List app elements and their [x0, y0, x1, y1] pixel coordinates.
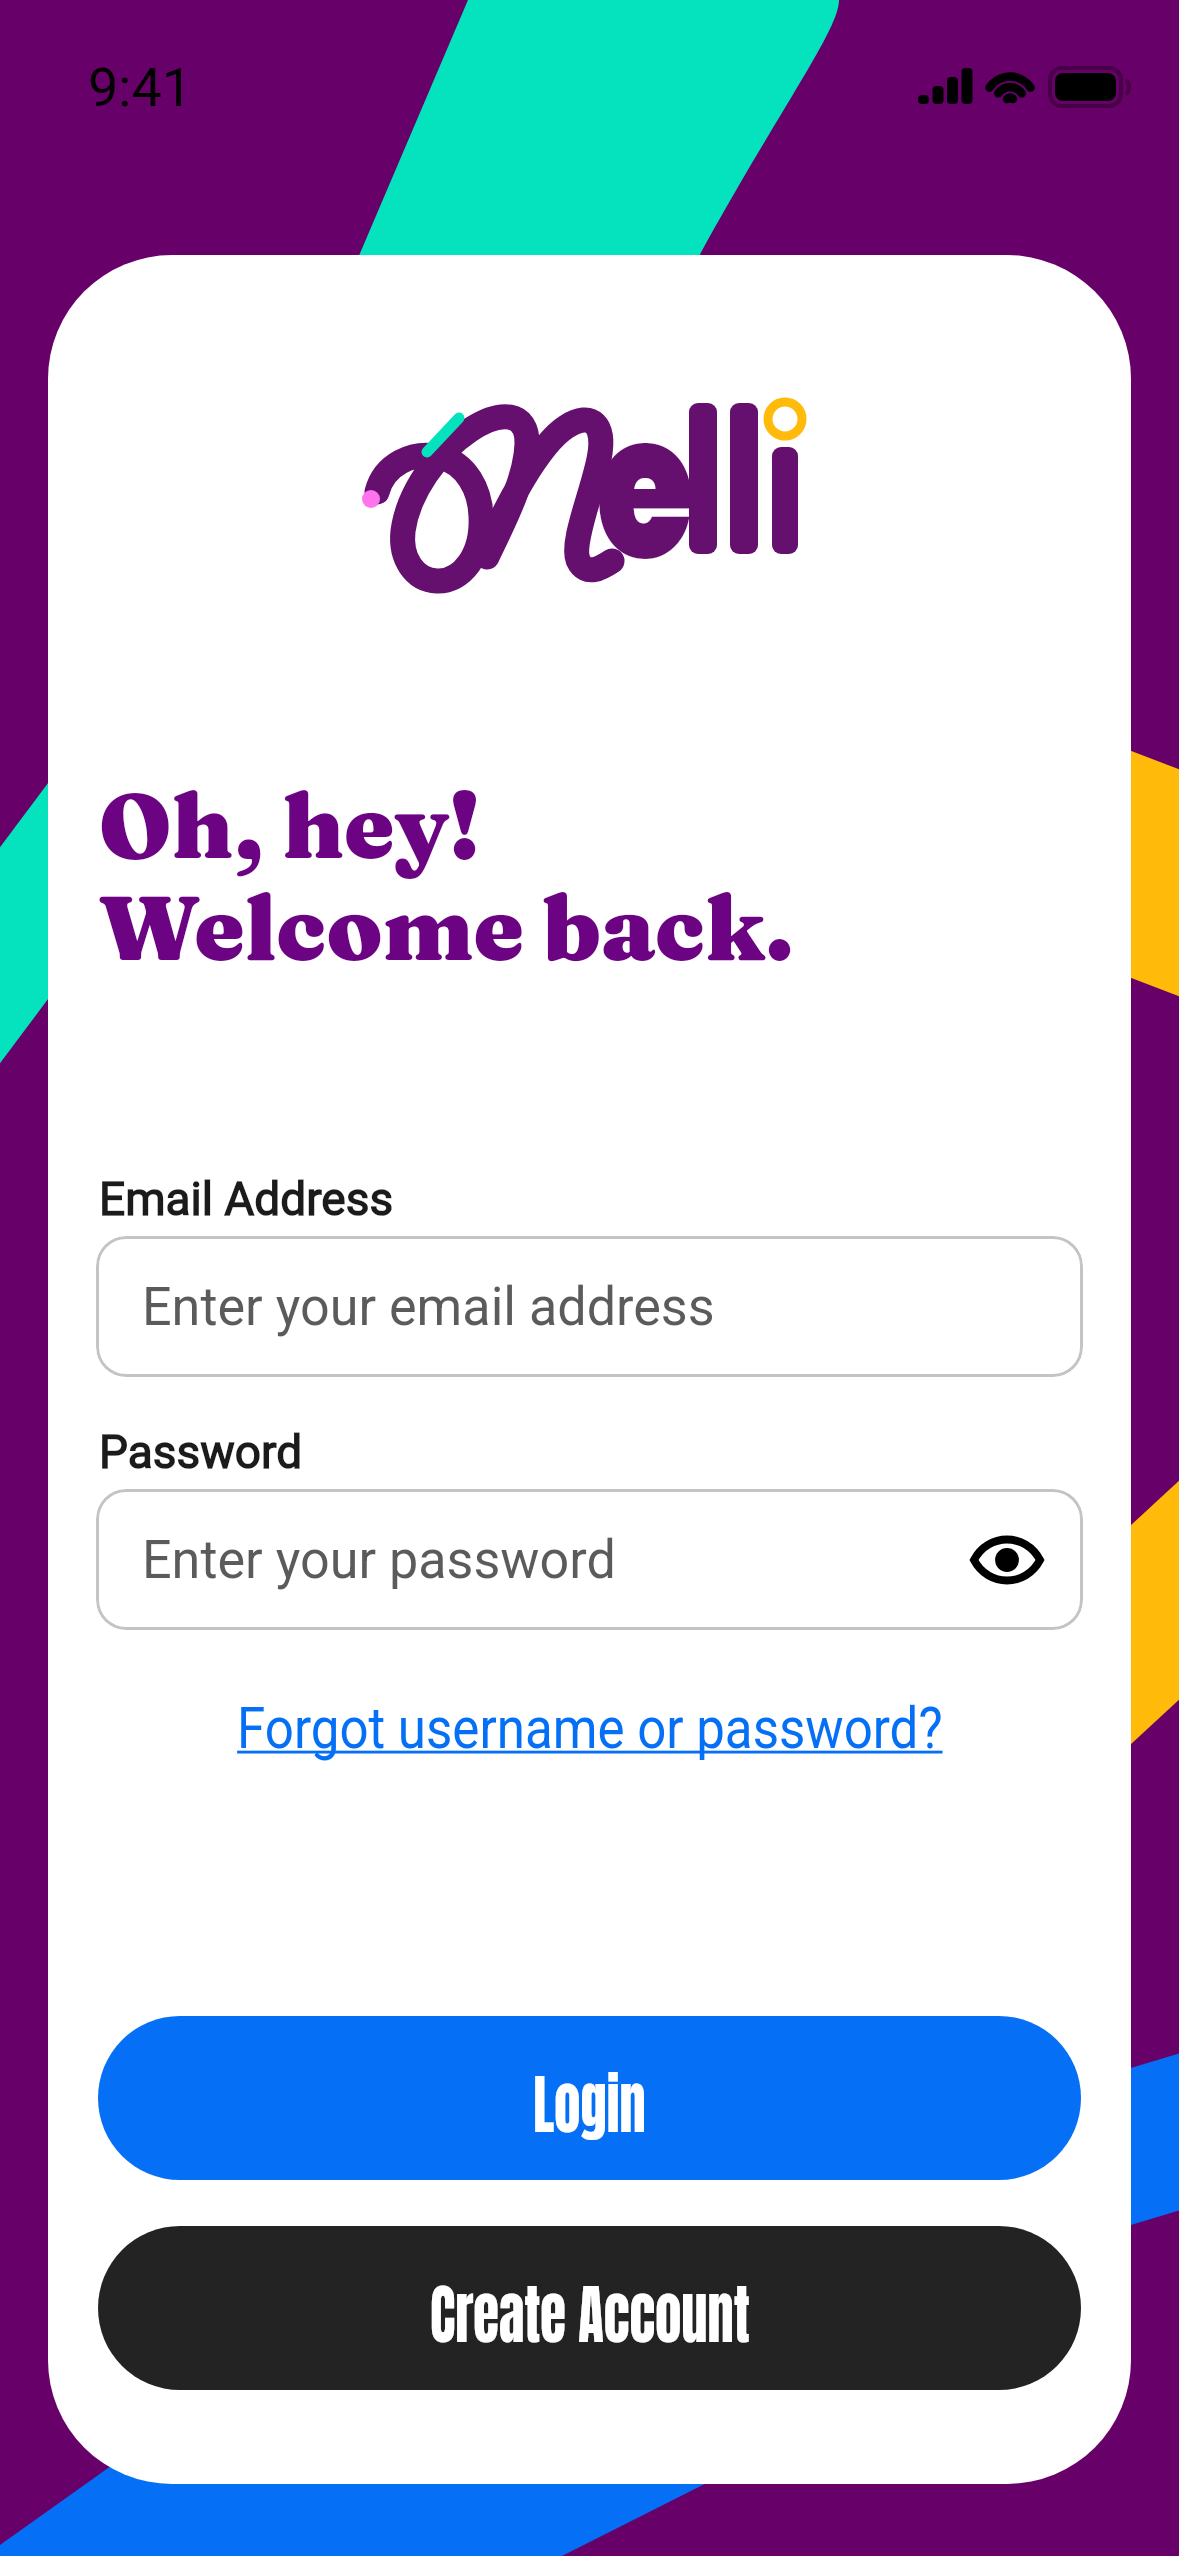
button[interactable]: Login [98, 2016, 1081, 2180]
button[interactable]: Forgot username or password? [48, 1680, 1131, 1776]
staticText: 9:41 [88, 56, 193, 119]
button[interactable]: Enter your password [96, 1489, 1083, 1630]
staticText: Oh, hey! [99, 770, 481, 881]
button[interactable]: Show password [967, 1520, 1047, 1600]
staticText: Login [533, 2057, 646, 2153]
staticText: Create Account [430, 2267, 750, 2363]
staticText: Welcome back. [99, 872, 795, 983]
staticText: Email Address [99, 1172, 394, 1226]
staticText: Forgot username or password? [237, 1694, 943, 1762]
staticText: Enter your email address [142, 1275, 715, 1338]
button[interactable]: Create Account [98, 2226, 1081, 2390]
staticText: e [596, 346, 695, 617]
staticText: Enter your password [142, 1528, 616, 1591]
button[interactable]: Enter your email address [96, 1236, 1083, 1377]
staticText: Password [99, 1425, 303, 1479]
